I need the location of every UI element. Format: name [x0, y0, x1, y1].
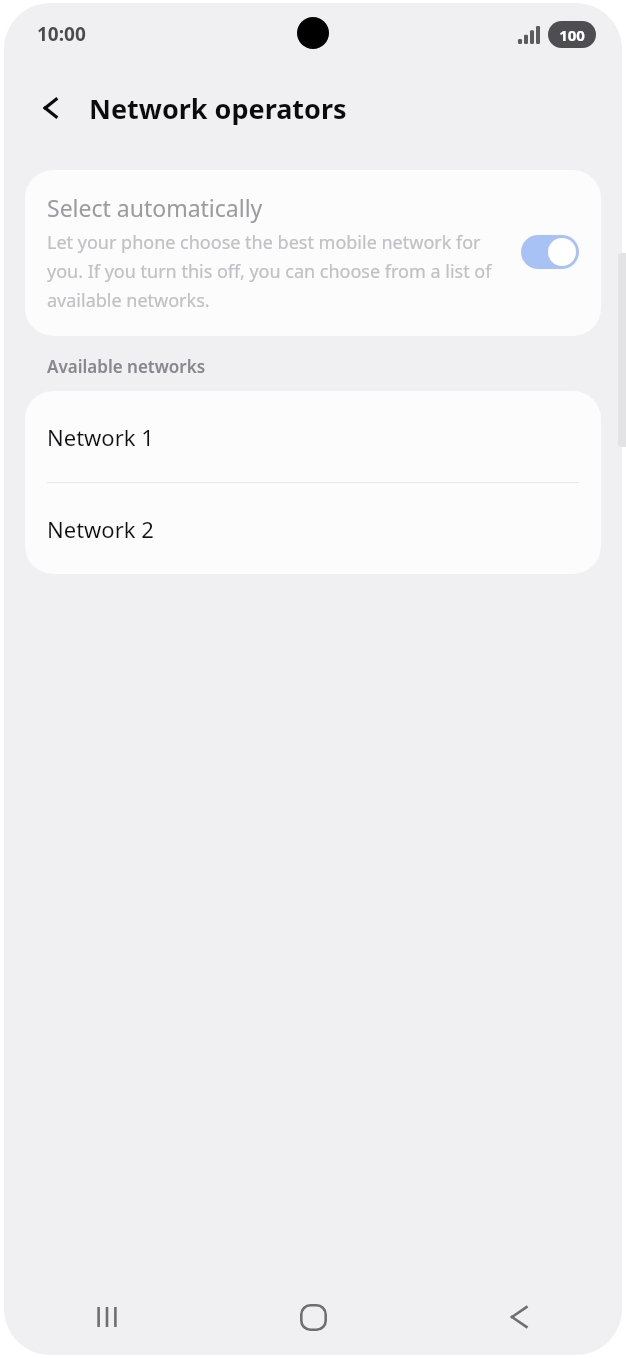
staticText: 100 [559, 25, 585, 45]
staticText: Network operators [89, 90, 347, 127]
button[interactable]: Back [416, 1279, 622, 1355]
button[interactable]: Network 2 [25, 483, 601, 574]
button[interactable]: Home [210, 1279, 416, 1355]
button[interactable]: Select automatically [25, 170, 601, 336]
button[interactable]: Select automatically [521, 235, 579, 269]
staticText: Select automatically [47, 192, 263, 223]
button[interactable]: Recent apps [4, 1279, 210, 1355]
staticText: Available networks [47, 355, 206, 378]
button[interactable]: Network 1 [25, 391, 601, 482]
button[interactable]: Navigate up [30, 85, 76, 131]
staticText: 10:00 [37, 21, 86, 47]
staticText: Network 2 [47, 514, 154, 544]
staticText: Network 1 [47, 422, 154, 452]
staticText: Let your phone choose the best mobile ne… [47, 230, 507, 312]
